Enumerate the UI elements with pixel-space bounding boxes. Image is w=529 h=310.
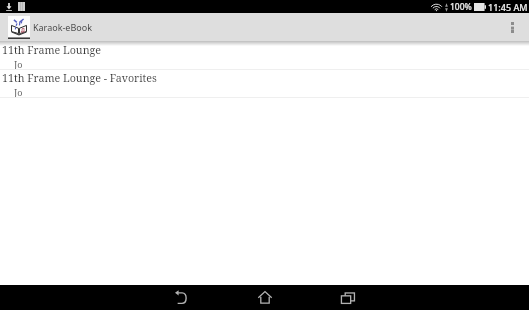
button[interactable]: App icon bbox=[7, 16, 30, 39]
staticText: 11th Frame Lounge - Favorites bbox=[2, 71, 157, 86]
button[interactable]: Recent apps bbox=[324, 285, 372, 310]
button[interactable]: Back bbox=[157, 285, 205, 310]
button[interactable]: More options bbox=[498, 13, 526, 41]
staticText: 11th Frame Lounge bbox=[2, 43, 101, 58]
button[interactable]: 11th Frame Lounge bbox=[0, 41, 529, 70]
staticText: 100% bbox=[450, 1, 472, 13]
staticText: 11:45 AM bbox=[488, 1, 528, 13]
button[interactable]: 11th Frame Lounge - Favorites bbox=[0, 70, 529, 98]
staticText: Karaok-eBook bbox=[33, 21, 92, 33]
staticText: Jo bbox=[14, 86, 23, 98]
button[interactable]: Home bbox=[240, 285, 289, 310]
staticText: Jo bbox=[14, 58, 23, 70]
